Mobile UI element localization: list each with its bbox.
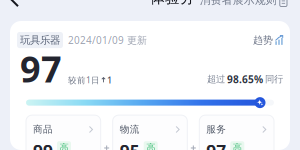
staticText: 趋势 (253, 34, 273, 46)
staticText: 体验分 (150, 0, 195, 7)
staticText: 高 (146, 142, 155, 150)
staticText: 2024/01/09 更新 (68, 33, 147, 47)
staticText: 超过 (207, 73, 225, 85)
staticText: 同行 (265, 73, 283, 85)
staticText: 消费者展示规则 (200, 0, 277, 7)
staticText: 玩具乐器 (20, 33, 60, 47)
staticText: 商品 (33, 123, 53, 135)
staticText: 97 (20, 44, 62, 93)
staticText: 95 (120, 139, 140, 150)
staticText: 98.65% (227, 72, 263, 86)
button[interactable]: 消费者展示规则 (200, 0, 300, 7)
button[interactable]: 商品 (26, 115, 101, 150)
staticText: 高 (59, 142, 68, 150)
staticText: 97 (206, 139, 226, 150)
button[interactable]: 物流 (113, 115, 187, 150)
button[interactable]: 趋势 (253, 34, 283, 46)
button[interactable]: 服务 (199, 115, 274, 150)
staticText: 99 (33, 139, 53, 150)
staticText: 物流 (120, 123, 140, 135)
staticText: 高 (233, 142, 242, 150)
staticText: 服务 (206, 123, 226, 135)
staticText: 较前1日 (68, 74, 100, 86)
staticText: 1 (107, 74, 112, 86)
button[interactable]: Back (0, 0, 34, 7)
